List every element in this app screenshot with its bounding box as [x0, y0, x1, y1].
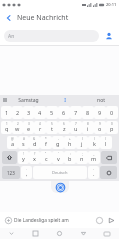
staticText: 0: [110, 109, 114, 116]
button[interactable]: Back: [0, 9, 17, 26]
staticText: z: [63, 125, 66, 132]
button[interactable]: 0: [106, 106, 118, 119]
button[interactable]: .: [21, 166, 32, 179]
staticText: .: [93, 170, 95, 177]
staticText: 8: [86, 109, 90, 116]
staticText: _: [93, 152, 95, 156]
button[interactable]: /: [100, 136, 112, 149]
button[interactable]: 2: [12, 121, 23, 134]
button[interactable]: 6: [58, 121, 70, 134]
button[interactable]: 8: [82, 121, 94, 134]
button[interactable]: ": [40, 151, 52, 164]
staticText: k: [93, 140, 96, 147]
button[interactable]: 123: [2, 166, 20, 179]
button[interactable]: Enter: [100, 166, 117, 179]
button[interactable]: Backspace: [101, 151, 117, 164]
button[interactable]: 1: [1, 121, 12, 134]
button[interactable]: Shift: [2, 151, 17, 164]
button[interactable]: 4: [34, 106, 46, 119]
button[interactable]: 3: [23, 121, 34, 134]
staticText: o: [98, 125, 102, 132]
staticText: ): [94, 137, 95, 141]
staticText: -: [58, 137, 59, 141]
staticText: i: [87, 125, 89, 132]
button[interactable]: 7: [70, 121, 82, 134]
staticText: 5: [51, 122, 53, 126]
staticText: (: [82, 137, 83, 141]
staticText: 1: [6, 122, 8, 126]
button[interactable]: 2: [12, 106, 23, 119]
staticText: 1: [5, 109, 9, 116]
button[interactable]: not: [83, 95, 119, 105]
button[interactable]: Emoji: [93, 214, 105, 226]
staticText: m: [91, 155, 97, 162]
button[interactable]: @: [7, 136, 18, 149]
staticText: &: [33, 137, 36, 141]
staticText: .: [26, 167, 27, 171]
button[interactable]: An: [4, 30, 99, 42]
staticText: Deutsch: [52, 170, 68, 175]
button[interactable]: 7: [70, 106, 82, 119]
button[interactable]: ;: [76, 151, 88, 164]
button[interactable]: 4: [34, 121, 46, 134]
staticText: 20:11: [106, 2, 117, 7]
button[interactable]: *: [40, 136, 52, 149]
button[interactable]: :: [64, 151, 76, 164]
button[interactable]: 9: [94, 121, 106, 134]
staticText: Samstag: [18, 97, 39, 104]
staticText: -: [93, 167, 94, 171]
staticText: 4: [38, 109, 42, 116]
button[interactable]: &: [29, 136, 40, 149]
staticText: 8: [87, 122, 89, 126]
button[interactable]: -: [52, 136, 64, 149]
button[interactable]: Attach: [2, 214, 14, 226]
staticText: s: [22, 140, 25, 147]
button[interactable]: 9: [94, 106, 106, 119]
staticText: 3: [27, 109, 31, 116]
button[interactable]: !: [18, 151, 29, 164]
button[interactable]: 6: [58, 106, 70, 119]
staticText: g: [56, 140, 60, 147]
button[interactable]: Samstag: [10, 95, 47, 105]
button[interactable]: 0: [106, 121, 118, 134]
staticText: q: [5, 125, 9, 132]
button[interactable]: Send: [105, 214, 117, 226]
button[interactable]: 3: [23, 106, 34, 119]
button[interactable]: Recents: [23, 228, 47, 239]
button[interactable]: _: [88, 151, 100, 164]
staticText: 2: [16, 109, 20, 116]
button[interactable]: 5: [46, 121, 58, 134]
button[interactable]: I: [47, 95, 83, 105]
button[interactable]: (: [76, 136, 88, 149]
staticText: +: [69, 137, 71, 141]
staticText: 9: [98, 109, 102, 116]
staticText: 123: [7, 170, 15, 176]
staticText: ;: [82, 152, 83, 156]
button[interactable]: [0, 95, 10, 105]
staticText: u: [74, 125, 78, 132]
button[interactable]: ': [52, 151, 64, 164]
button[interactable]: Die Landesliga spielt am: [14, 217, 93, 224]
staticText: I: [64, 97, 66, 104]
button[interactable]: Hide keyboard: [0, 228, 23, 239]
button[interactable]: #: [18, 136, 29, 149]
staticText: j: [81, 140, 83, 147]
staticText: t: [51, 125, 53, 132]
button[interactable]: Home: [47, 228, 71, 239]
button[interactable]: Voice input: [51, 181, 69, 193]
button[interactable]: ): [88, 136, 100, 149]
button[interactable]: Back: [71, 228, 95, 239]
button[interactable]: 5: [46, 106, 58, 119]
button[interactable]: -: [88, 166, 99, 179]
button[interactable]: +: [64, 136, 76, 149]
button[interactable]: Deutsch: [33, 166, 87, 179]
staticText: not: [97, 97, 105, 104]
staticText: #: [23, 137, 25, 141]
button[interactable]: ?: [29, 151, 40, 164]
button[interactable]: Add contact: [103, 30, 115, 42]
staticText: w: [15, 125, 20, 132]
button[interactable]: 8: [82, 106, 94, 119]
staticText: 4: [39, 122, 41, 126]
button[interactable]: 1: [1, 106, 12, 119]
button[interactable]: Keyboard switch: [95, 228, 119, 239]
